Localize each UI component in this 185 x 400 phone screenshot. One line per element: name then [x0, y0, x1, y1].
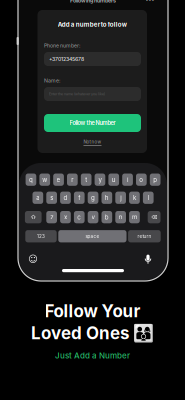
- staticText: k: [133, 194, 136, 201]
- staticText: p: [153, 176, 157, 183]
- staticText: f: [78, 194, 80, 201]
- staticText: o: [139, 176, 143, 183]
- staticText: Loved Ones 👨‍👩‍👦: [31, 323, 154, 343]
- staticText: b: [105, 213, 109, 221]
- staticText: Phone number:: [44, 42, 80, 49]
- staticText: e: [57, 176, 61, 183]
- staticText: r: [71, 176, 73, 183]
- button[interactable]: Not now: [0, 0, 185, 400]
- staticText: t: [85, 176, 87, 183]
- staticText: +37012345678: [49, 56, 84, 62]
- staticText: Follow the Number: [69, 120, 115, 126]
- staticText: Not now: [83, 139, 101, 145]
- staticText: Follow Your: [44, 301, 140, 321]
- staticText: space: [85, 233, 99, 239]
- staticText: a: [36, 194, 39, 201]
- staticText: d: [63, 194, 67, 201]
- button[interactable]: Follow the Number: [0, 0, 185, 400]
- staticText: return: [137, 233, 151, 239]
- staticText: u: [112, 176, 116, 183]
- staticText: l: [148, 194, 149, 201]
- staticText: s: [50, 194, 53, 201]
- staticText: v: [92, 213, 95, 221]
- staticText: Name:: [44, 77, 60, 84]
- staticText: h: [105, 194, 109, 201]
- staticText: Add a number to follow: [58, 21, 127, 28]
- staticText: j: [120, 194, 121, 201]
- staticText: i: [127, 176, 128, 183]
- staticText: Following numbers: [70, 0, 116, 4]
- staticText: n: [119, 213, 123, 221]
- staticText: x: [64, 213, 67, 221]
- staticText: •••: [145, 0, 154, 3]
- staticText: q: [29, 176, 33, 183]
- staticText: ⇧: [30, 213, 36, 221]
- staticText: m: [132, 213, 137, 221]
- staticText: 123: [37, 233, 45, 239]
- staticText: Just Add a Number: [55, 351, 130, 360]
- staticText: y: [98, 176, 101, 183]
- staticText: w: [42, 176, 47, 183]
- staticText: c: [77, 213, 81, 221]
- staticText: ⌫: [151, 214, 157, 220]
- staticText: ☺: [28, 254, 38, 264]
- staticText: g: [91, 194, 95, 201]
- staticText: Enter the name (whatever you like): [49, 92, 105, 96]
- staticText: z: [50, 213, 53, 221]
